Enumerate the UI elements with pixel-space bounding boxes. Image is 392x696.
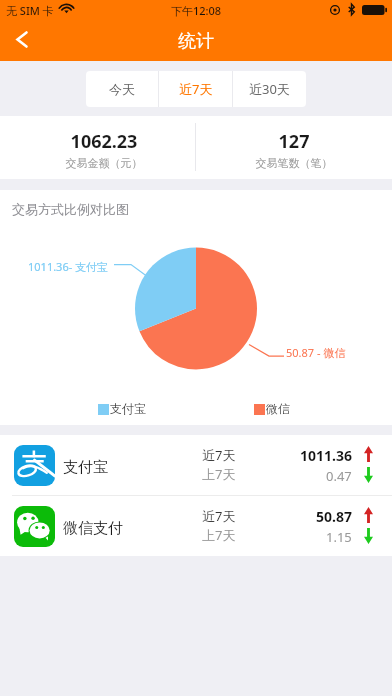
button[interactable]: 支付宝 [0,435,392,495]
staticText: 无 SIM 卡 [6,3,54,18]
button[interactable]: Back [8,25,36,53]
staticText: 50.87 - 微信 [286,345,346,360]
staticText: 1062.23 [14,129,194,154]
staticText: 微信 [266,401,290,416]
staticText: 1.15 [326,528,352,546]
staticText: 支付宝 [110,401,146,416]
staticText: 1011.36- 支付宝 [28,259,109,274]
staticText: 微信支付 [63,519,123,538]
staticText: 上7天 [202,526,236,544]
staticText: 上7天 [202,465,236,483]
staticText: 127 [204,129,384,154]
button[interactable]: 今天 [86,71,158,107]
staticText: 交易笔数（笔） [204,156,384,170]
staticText: 下午12:08 [0,3,392,18]
staticText: 近30天 [249,80,290,98]
staticText: 近7天 [179,80,213,98]
button[interactable]: 近7天 [159,71,232,107]
button[interactable]: 微信支付 [0,496,392,556]
button[interactable]: 近30天 [233,71,306,107]
staticText: 1011.36 [300,446,352,465]
staticText: 今天 [109,81,135,97]
staticText: 近7天 [202,446,236,464]
staticText: 交易方式比例对比图 [12,201,129,217]
staticText: 0.47 [326,467,352,485]
staticText: 统计 [0,30,392,53]
staticText: 交易金额（元） [14,156,194,170]
staticText: 近7天 [202,507,236,525]
staticText: 50.87 [316,507,352,526]
staticText: 支付宝 [63,458,108,477]
